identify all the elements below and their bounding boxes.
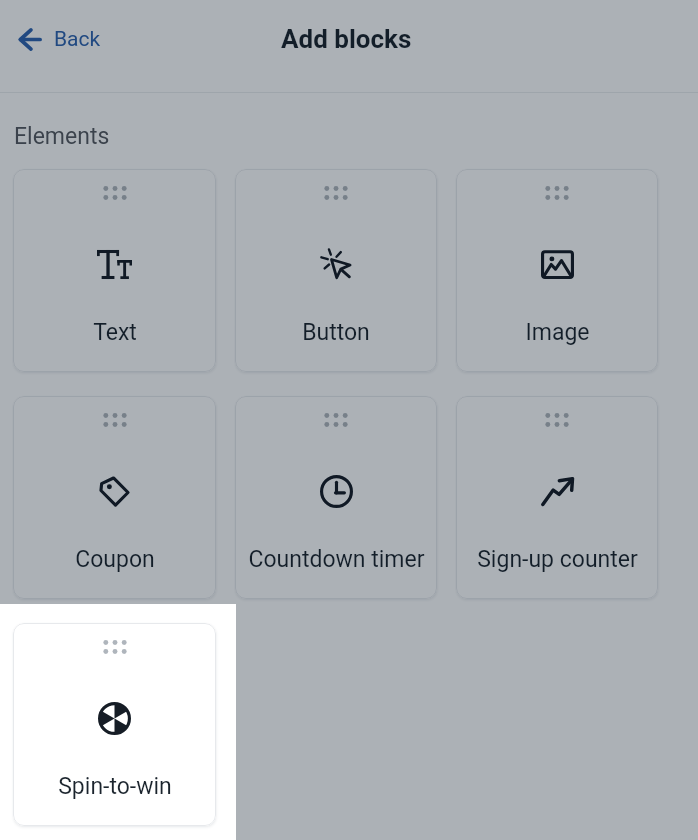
button[interactable]: Back	[12, 19, 107, 60]
staticText: Back	[54, 27, 101, 52]
staticText: Countdown timer	[248, 546, 425, 573]
staticText: Text	[93, 319, 137, 346]
staticText: Sign-up counter	[477, 546, 638, 573]
button[interactable]: Sign-up counter	[456, 396, 658, 599]
staticText: Coupon	[75, 546, 155, 573]
button[interactable]: Button	[235, 169, 437, 372]
button[interactable]: Image	[456, 169, 658, 372]
other: Back	[18, 28, 42, 51]
button[interactable]: Countdown timer	[235, 396, 437, 599]
staticText: Elements	[14, 123, 110, 150]
button[interactable]: Spin-to-win	[13, 623, 216, 826]
staticText: Spin-to-win	[58, 773, 172, 800]
staticText: Add blocks	[281, 24, 412, 54]
staticText: Button	[302, 319, 370, 346]
button[interactable]: Text	[13, 169, 216, 372]
button[interactable]: Coupon	[13, 396, 216, 599]
staticText: Image	[525, 319, 590, 346]
